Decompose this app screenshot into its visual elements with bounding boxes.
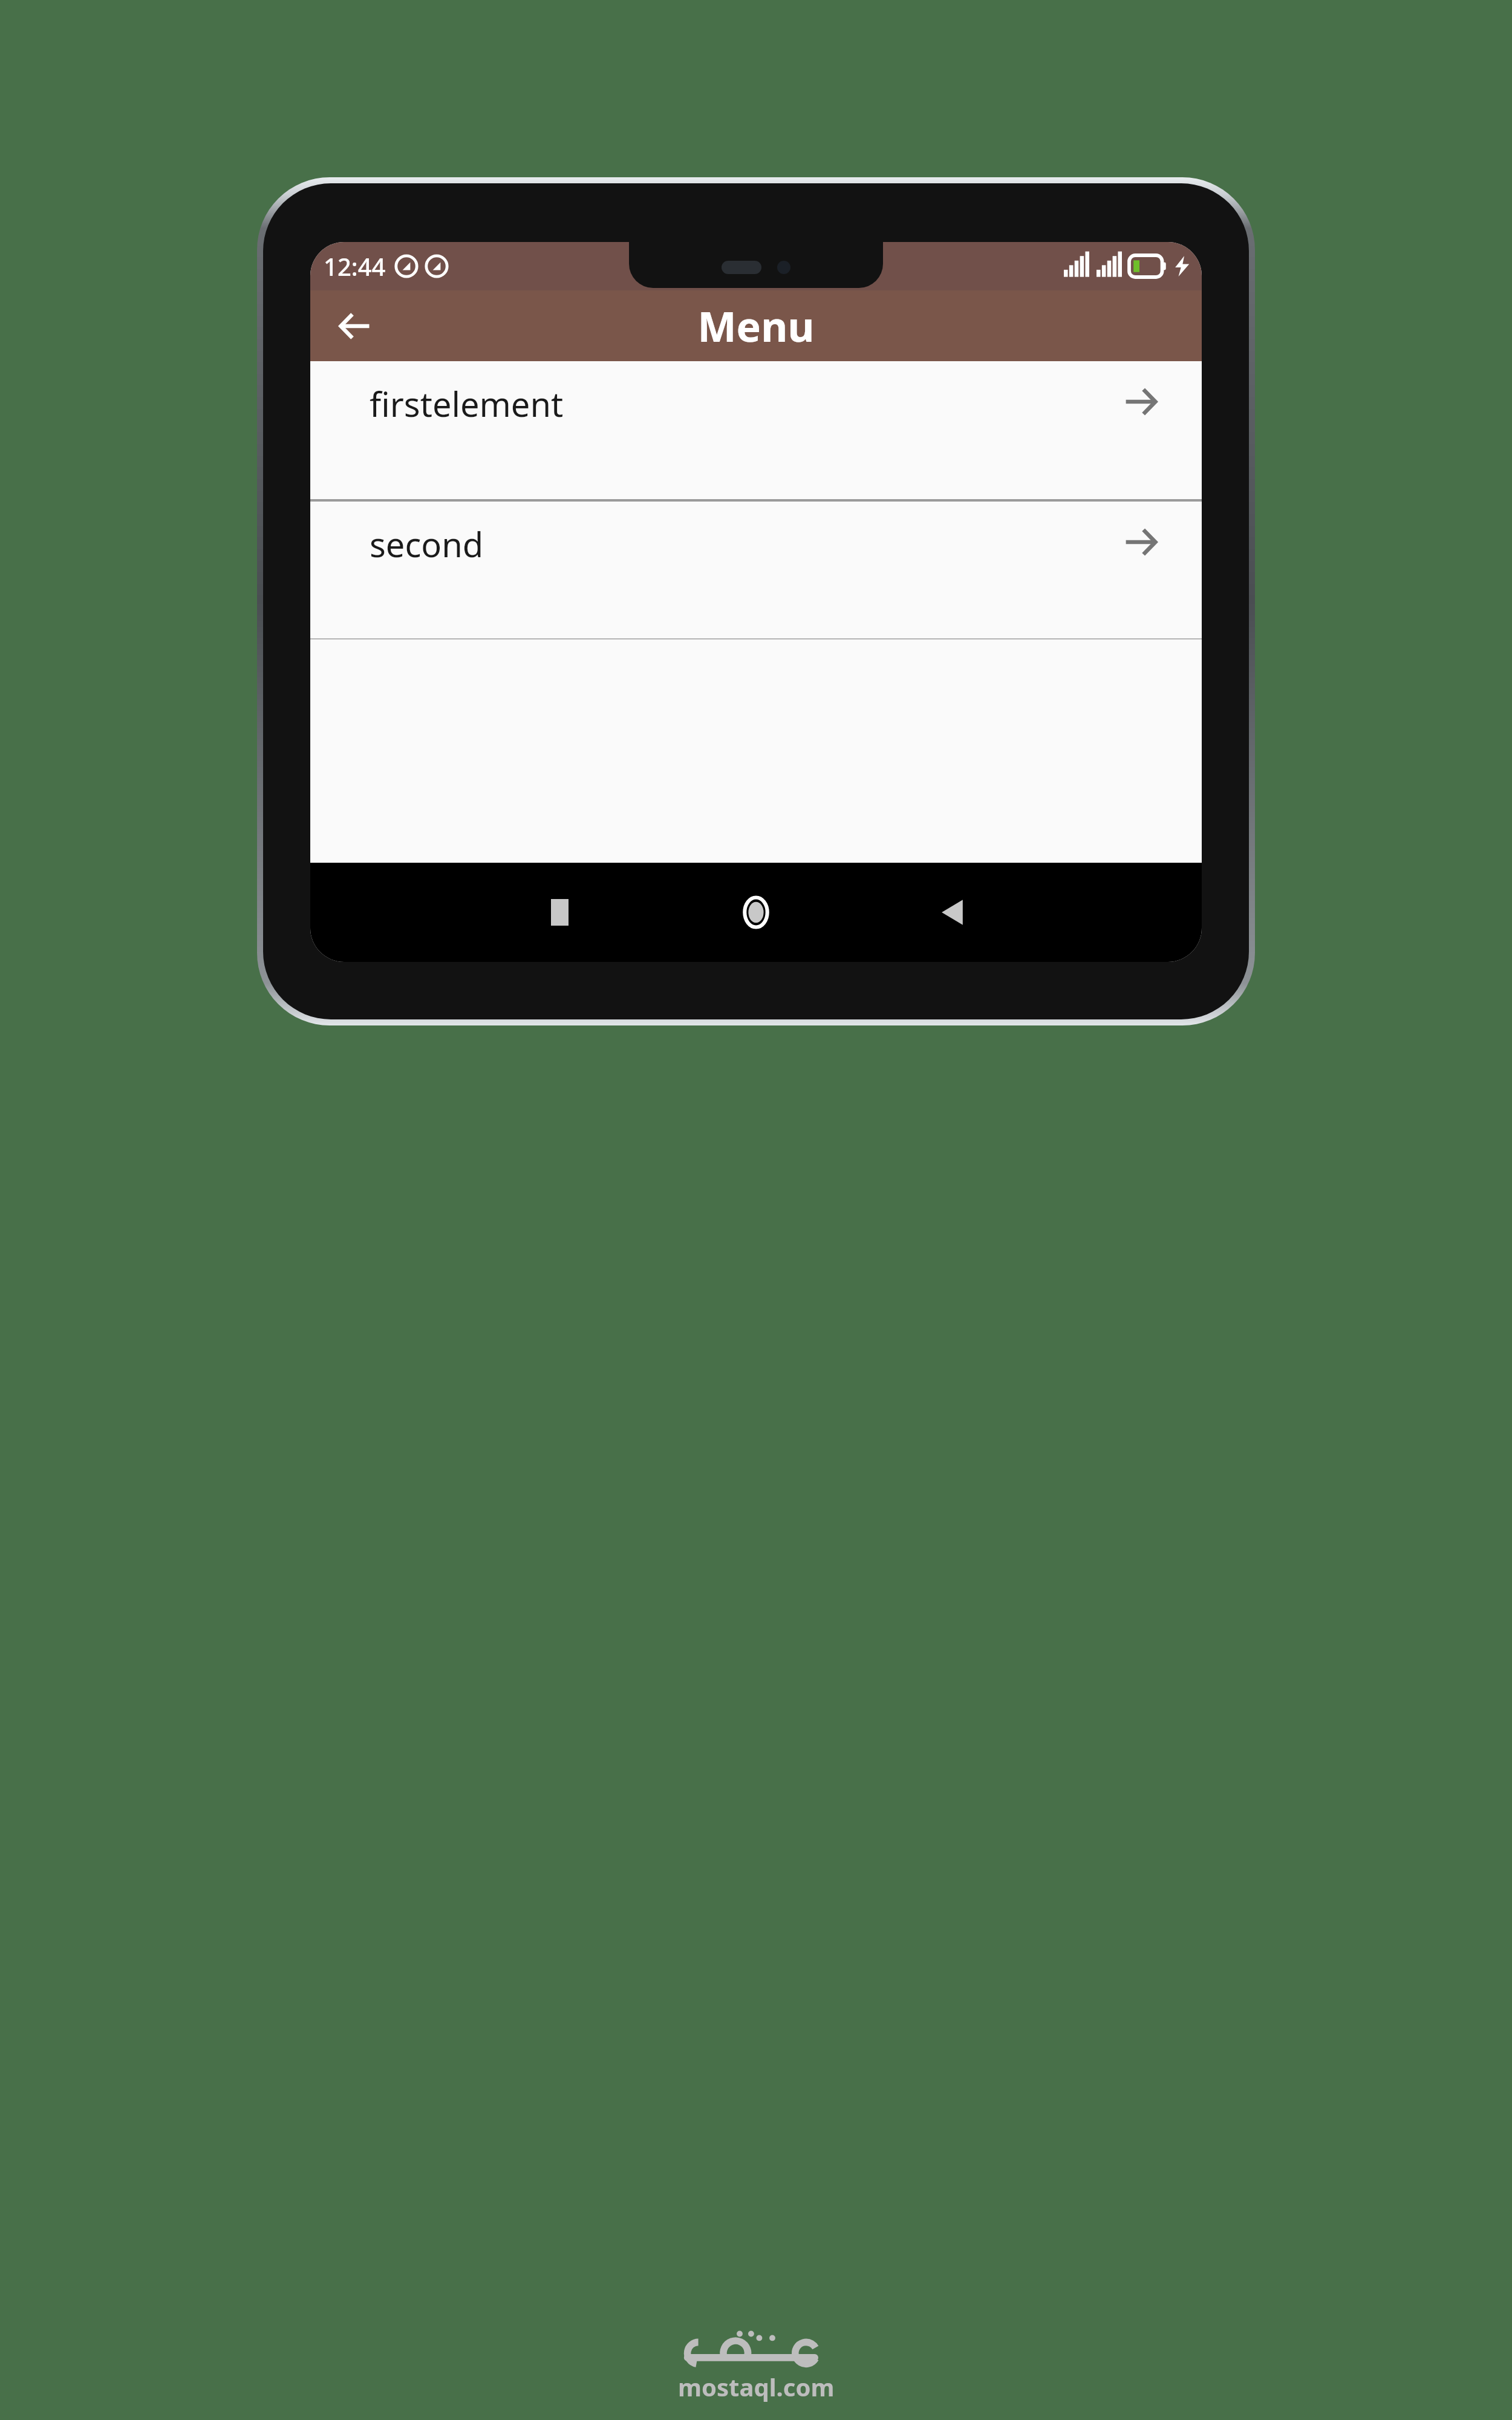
button[interactable]: Recent apps bbox=[461, 879, 657, 946]
button[interactable]: firstelement bbox=[310, 361, 1202, 499]
staticText: 12:44 bbox=[324, 250, 386, 283]
staticText: firstelement bbox=[370, 381, 564, 427]
staticText: second bbox=[370, 521, 484, 567]
button[interactable]: Back bbox=[854, 879, 1051, 946]
button[interactable]: Back bbox=[328, 299, 382, 353]
button[interactable]: Home bbox=[657, 879, 854, 946]
staticText: Menu bbox=[697, 298, 815, 354]
button[interactable]: second bbox=[310, 502, 1202, 638]
staticText: mostaql.com bbox=[678, 2370, 835, 2403]
